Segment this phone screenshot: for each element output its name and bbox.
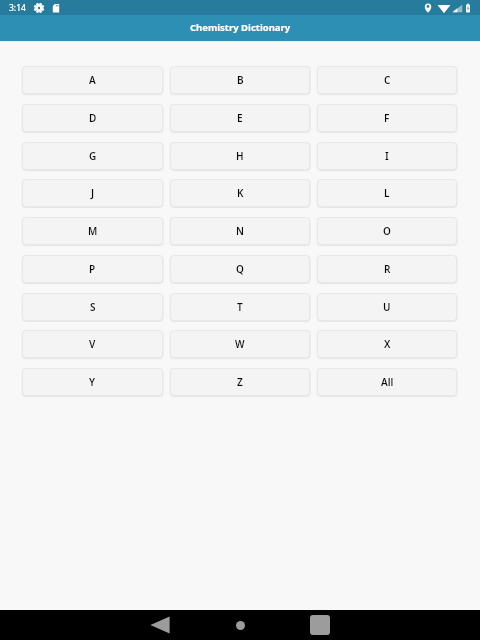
button[interactable]: G: [22, 142, 163, 170]
staticText: I: [385, 149, 389, 163]
staticText: U: [383, 300, 391, 314]
button[interactable]: Back: [145, 610, 175, 640]
staticText: T: [237, 300, 243, 314]
staticText: R: [384, 262, 391, 276]
staticText: A: [89, 73, 96, 87]
button[interactable]: F: [317, 104, 457, 132]
button[interactable]: Q: [170, 255, 310, 283]
button[interactable]: All: [317, 368, 457, 396]
staticText: H: [236, 149, 244, 163]
staticText: B: [237, 73, 244, 87]
staticText: J: [91, 186, 95, 200]
staticText: 3:14: [9, 2, 26, 14]
button[interactable]: L: [317, 179, 457, 207]
button[interactable]: P: [22, 255, 163, 283]
button[interactable]: Recents: [305, 610, 335, 640]
button[interactable]: K: [170, 179, 310, 207]
button[interactable]: C: [317, 66, 457, 94]
staticText: V: [89, 337, 96, 351]
staticText: W: [235, 337, 245, 351]
staticText: L: [384, 186, 390, 200]
staticText: S: [90, 300, 96, 314]
button[interactable]: Y: [22, 368, 163, 396]
button[interactable]: A: [22, 66, 163, 94]
button[interactable]: W: [170, 330, 310, 358]
staticText: P: [89, 262, 96, 276]
staticText: K: [237, 186, 244, 200]
staticText: Y: [89, 375, 96, 389]
staticText: X: [384, 337, 391, 351]
button[interactable]: T: [170, 293, 310, 321]
button[interactable]: J: [22, 179, 163, 207]
button[interactable]: Home: [225, 610, 255, 640]
staticText: F: [384, 111, 390, 125]
staticText: Chemistry Dictionary: [190, 21, 291, 34]
button[interactable]: O: [317, 217, 457, 245]
button[interactable]: R: [317, 255, 457, 283]
button[interactable]: U: [317, 293, 457, 321]
staticText: O: [383, 224, 391, 238]
button[interactable]: H: [170, 142, 310, 170]
button[interactable]: D: [22, 104, 163, 132]
button[interactable]: X: [317, 330, 457, 358]
button[interactable]: Z: [170, 368, 310, 396]
staticText: All: [381, 375, 394, 389]
staticText: C: [384, 73, 391, 87]
button[interactable]: B: [170, 66, 310, 94]
button[interactable]: E: [170, 104, 310, 132]
button[interactable]: M: [22, 217, 163, 245]
staticText: Q: [236, 262, 244, 276]
button[interactable]: I: [317, 142, 457, 170]
staticText: M: [88, 224, 98, 238]
button[interactable]: S: [22, 293, 163, 321]
button[interactable]: N: [170, 217, 310, 245]
staticText: N: [236, 224, 244, 238]
staticText: Z: [237, 375, 243, 389]
staticText: D: [89, 111, 97, 125]
staticText: E: [237, 111, 243, 125]
button[interactable]: V: [22, 330, 163, 358]
staticText: G: [89, 149, 97, 163]
